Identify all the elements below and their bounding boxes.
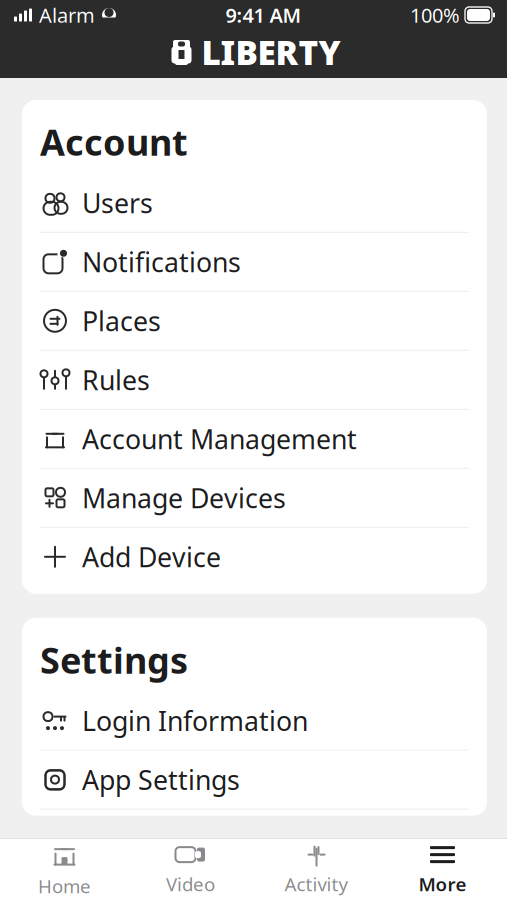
button[interactable]: Users xyxy=(22,174,487,232)
staticText: Account Management xyxy=(82,421,357,456)
button[interactable]: Rules xyxy=(22,351,487,409)
button[interactable]: App Settings xyxy=(22,751,487,809)
staticText: Manage Devices xyxy=(82,480,286,515)
button[interactable]: Account Management xyxy=(22,410,487,468)
staticText: Users xyxy=(82,185,153,220)
staticText: More xyxy=(418,872,466,896)
button[interactable]: Add Device xyxy=(22,528,487,586)
staticText: 100% xyxy=(410,2,460,28)
staticText: Notifications xyxy=(82,244,241,279)
button[interactable]: Login Information xyxy=(22,692,487,750)
staticText: Places xyxy=(82,303,161,338)
button[interactable]: Home xyxy=(1,838,127,900)
staticText: About xyxy=(40,858,150,900)
button[interactable]: Manage Devices xyxy=(22,469,487,527)
staticText: Home xyxy=(38,874,91,898)
staticText: 9:41 AM xyxy=(225,2,301,28)
staticText: LIBERTY xyxy=(201,30,340,74)
staticText: Add Device xyxy=(82,539,221,574)
staticText: Activity xyxy=(284,872,348,896)
staticText: Account xyxy=(40,118,188,166)
button[interactable]: Activity xyxy=(253,838,379,900)
staticText: Rules xyxy=(82,362,150,397)
staticText: Alarm xyxy=(39,2,95,28)
staticText: Settings xyxy=(40,636,188,684)
staticText: Video xyxy=(166,872,215,896)
staticText: Login Information xyxy=(82,703,308,738)
staticText: App Settings xyxy=(82,762,240,797)
button[interactable]: Liberty home xyxy=(166,28,340,76)
button[interactable]: Video xyxy=(127,838,253,900)
button[interactable]: Notifications xyxy=(22,233,487,291)
button[interactable]: Places xyxy=(22,292,487,350)
button[interactable]: More xyxy=(379,838,505,900)
